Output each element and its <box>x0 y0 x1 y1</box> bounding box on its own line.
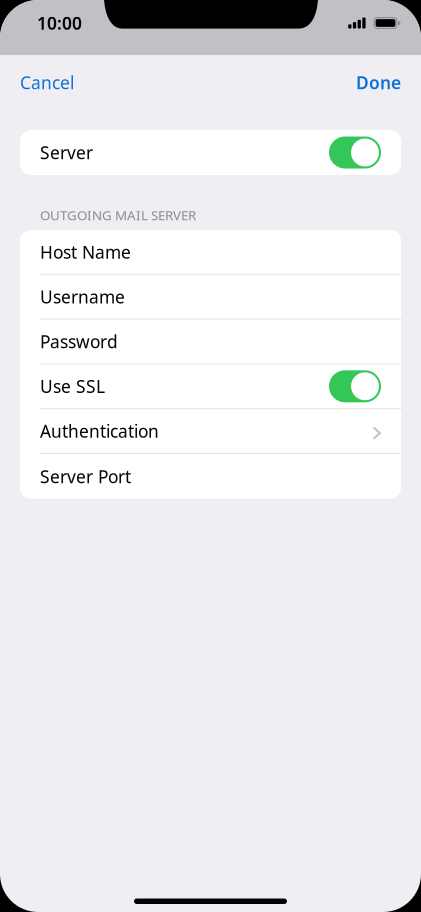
staticText: Use SSL <box>40 375 105 398</box>
staticText: Server Port <box>40 465 131 488</box>
button[interactable]: Password <box>20 320 401 364</box>
staticText: OUTGOING MAIL SERVER <box>40 206 196 224</box>
button[interactable]: Server Port <box>20 454 401 499</box>
button[interactable]: Cancel <box>20 58 84 106</box>
staticText: Username <box>40 285 125 308</box>
staticText: Password <box>40 330 118 353</box>
button[interactable]: Use SSL <box>20 364 401 409</box>
staticText: Cancel <box>20 71 74 94</box>
button[interactable]: Done <box>349 58 401 106</box>
staticText: Authentication <box>40 420 159 443</box>
button[interactable]: Username <box>20 275 401 320</box>
button[interactable]: Server, on <box>329 136 381 168</box>
button[interactable]: Host Name <box>20 230 401 275</box>
staticText: 10:00 <box>37 11 82 34</box>
button[interactable]: Server <box>20 130 401 175</box>
staticText: Host Name <box>40 240 131 263</box>
button[interactable]: Use SSL, on <box>329 370 381 402</box>
button[interactable]: Authentication <box>20 409 401 454</box>
staticText: Server <box>40 141 93 164</box>
staticText: Done <box>356 71 401 94</box>
